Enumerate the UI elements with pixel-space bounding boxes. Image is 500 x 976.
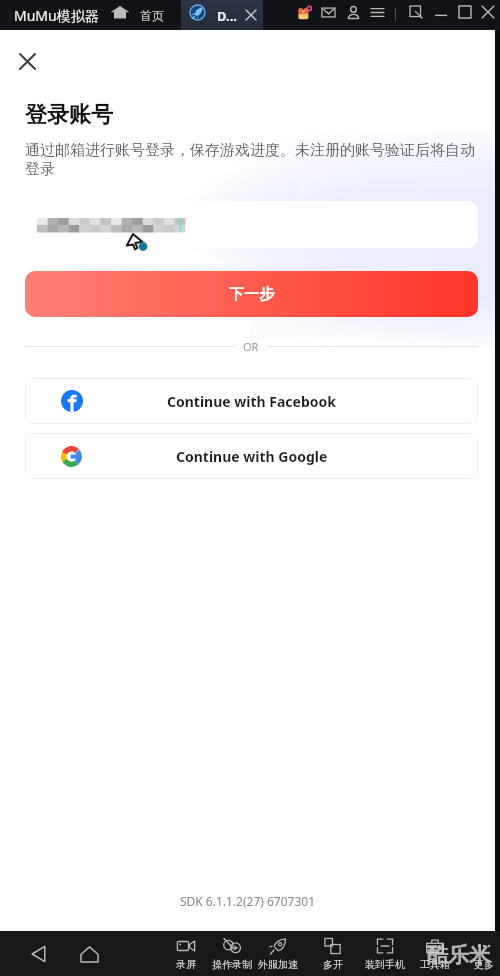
button[interactable]: 外服加速 [252, 931, 304, 976]
button[interactable]: Continue with Google [25, 433, 478, 479]
button[interactable] [25, 201, 478, 248]
staticText: 酷乐米 [427, 942, 490, 968]
button[interactable]: Continue with Facebook [25, 378, 478, 424]
staticText: 下一步 [229, 285, 274, 304]
staticText: 登录账号 [25, 101, 113, 129]
staticText: 首页 [140, 8, 164, 23]
staticText: 工具箱 [420, 958, 450, 971]
button[interactable]: Close [20, 54, 35, 69]
staticText: D... [217, 7, 237, 25]
staticText: Continue with Google [176, 447, 328, 466]
button[interactable]: 操作录制 [206, 931, 258, 976]
staticText: Continue with Facebook [167, 392, 336, 411]
button[interactable]: 工具箱 [409, 931, 461, 976]
button[interactable]: Menu [368, 3, 387, 22]
staticText: 外服加速 [258, 958, 298, 971]
button[interactable]: 录屏 [160, 931, 212, 976]
button[interactable]: Close tab [246, 10, 256, 20]
staticText: 录屏 [176, 958, 196, 971]
button[interactable]: Minimize [432, 3, 450, 21]
button[interactable]: Account [344, 3, 363, 22]
staticText: 通过邮箱进行账号登录，保存游戏进度。未注册的账号验证后将自动登录 [25, 141, 481, 179]
staticText: SDK 6.1.1.2(27) 6707301 [0, 893, 495, 909]
button[interactable]: Mail [319, 3, 338, 22]
button[interactable]: 装到手机 [359, 931, 411, 976]
staticText: 操作录制 [212, 958, 252, 971]
button[interactable]: 多开 [307, 931, 359, 976]
staticText: 更多 [474, 958, 494, 971]
staticText: 装到手机 [365, 958, 405, 971]
button[interactable]: Screenshot [407, 3, 425, 21]
button[interactable]: Maximize [456, 3, 474, 21]
button[interactable]: 下一步 [25, 271, 478, 317]
button[interactable]: Gifts [294, 3, 314, 23]
button[interactable] [181, 0, 263, 30]
button[interactable]: Close [479, 3, 497, 21]
button[interactable]: Back [27, 942, 51, 966]
button[interactable]: 更多 [458, 931, 500, 976]
button[interactable]: Home [110, 4, 130, 20]
staticText: 多开 [323, 958, 343, 971]
staticText: MuMu模拟器 [14, 6, 99, 25]
staticText: OR [243, 339, 259, 354]
button[interactable]: Home [77, 942, 101, 966]
